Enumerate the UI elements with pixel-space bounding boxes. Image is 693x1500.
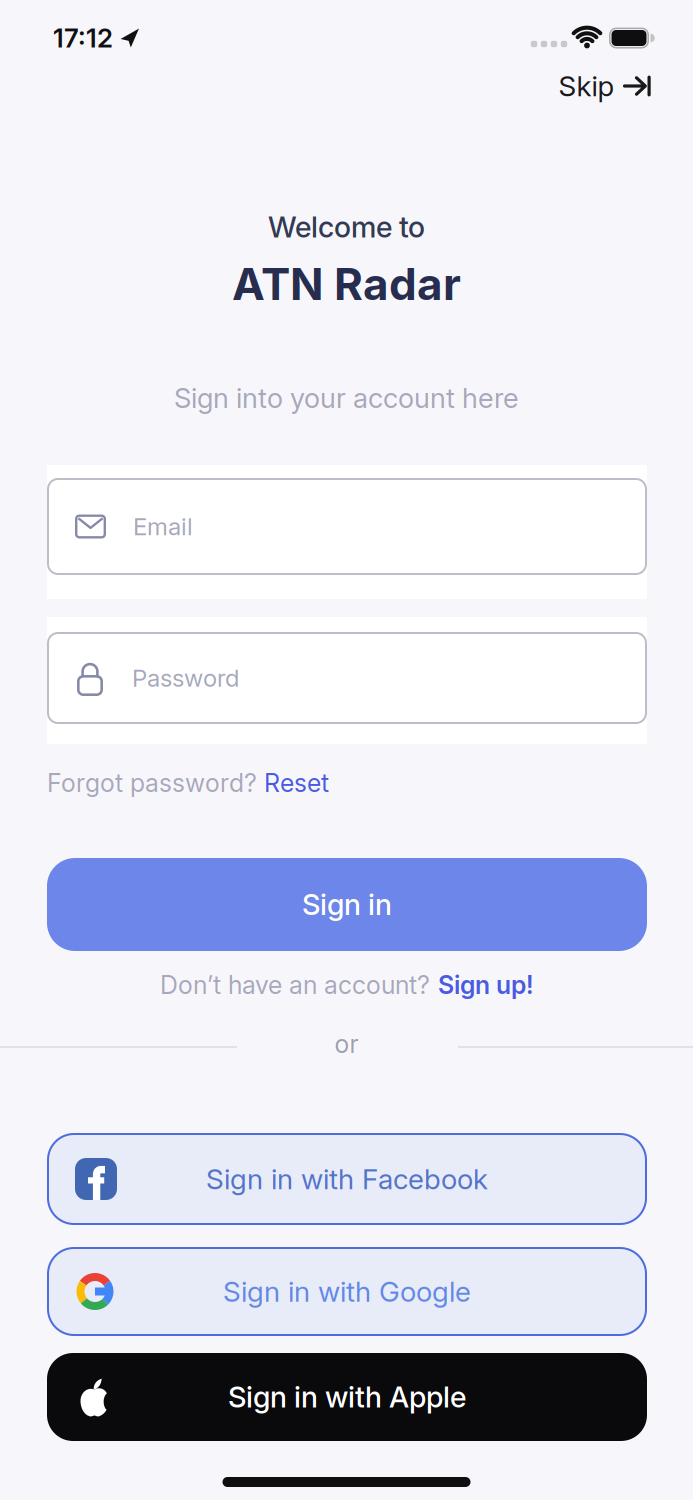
staticText: 17:12: [53, 22, 113, 54]
button[interactable]: Sign in with Google: [47, 1247, 647, 1336]
button[interactable]: Skip: [558, 69, 651, 103]
staticText: Sign in: [302, 887, 392, 922]
staticText: Sign in with Google: [223, 1275, 471, 1308]
button[interactable]: Password: [47, 632, 647, 724]
staticText: Forgot password?: [47, 768, 257, 798]
staticText: Sign in with Apple: [228, 1379, 466, 1415]
staticText: Welcome to: [268, 209, 425, 245]
staticText: Sign in with Facebook: [206, 1162, 488, 1196]
button[interactable]: Reset: [264, 768, 329, 798]
staticText: Don’t have an account?: [160, 970, 430, 1000]
staticText: Sign into your account here: [174, 381, 519, 415]
button[interactable]: Sign in with Facebook: [47, 1133, 647, 1225]
staticText: Email: [133, 512, 193, 541]
button[interactable]: Sign in: [47, 858, 647, 951]
staticText: Reset: [264, 768, 329, 798]
button[interactable]: Sign up!: [438, 970, 533, 1000]
staticText: Sign up!: [438, 970, 533, 1000]
staticText: Password: [132, 663, 239, 692]
staticText: ATN Radar: [232, 257, 461, 311]
staticText: or: [334, 1029, 358, 1059]
staticText: Skip: [558, 69, 614, 103]
button[interactable]: Email: [47, 478, 647, 575]
button[interactable]: Sign in with Apple: [47, 1353, 647, 1441]
